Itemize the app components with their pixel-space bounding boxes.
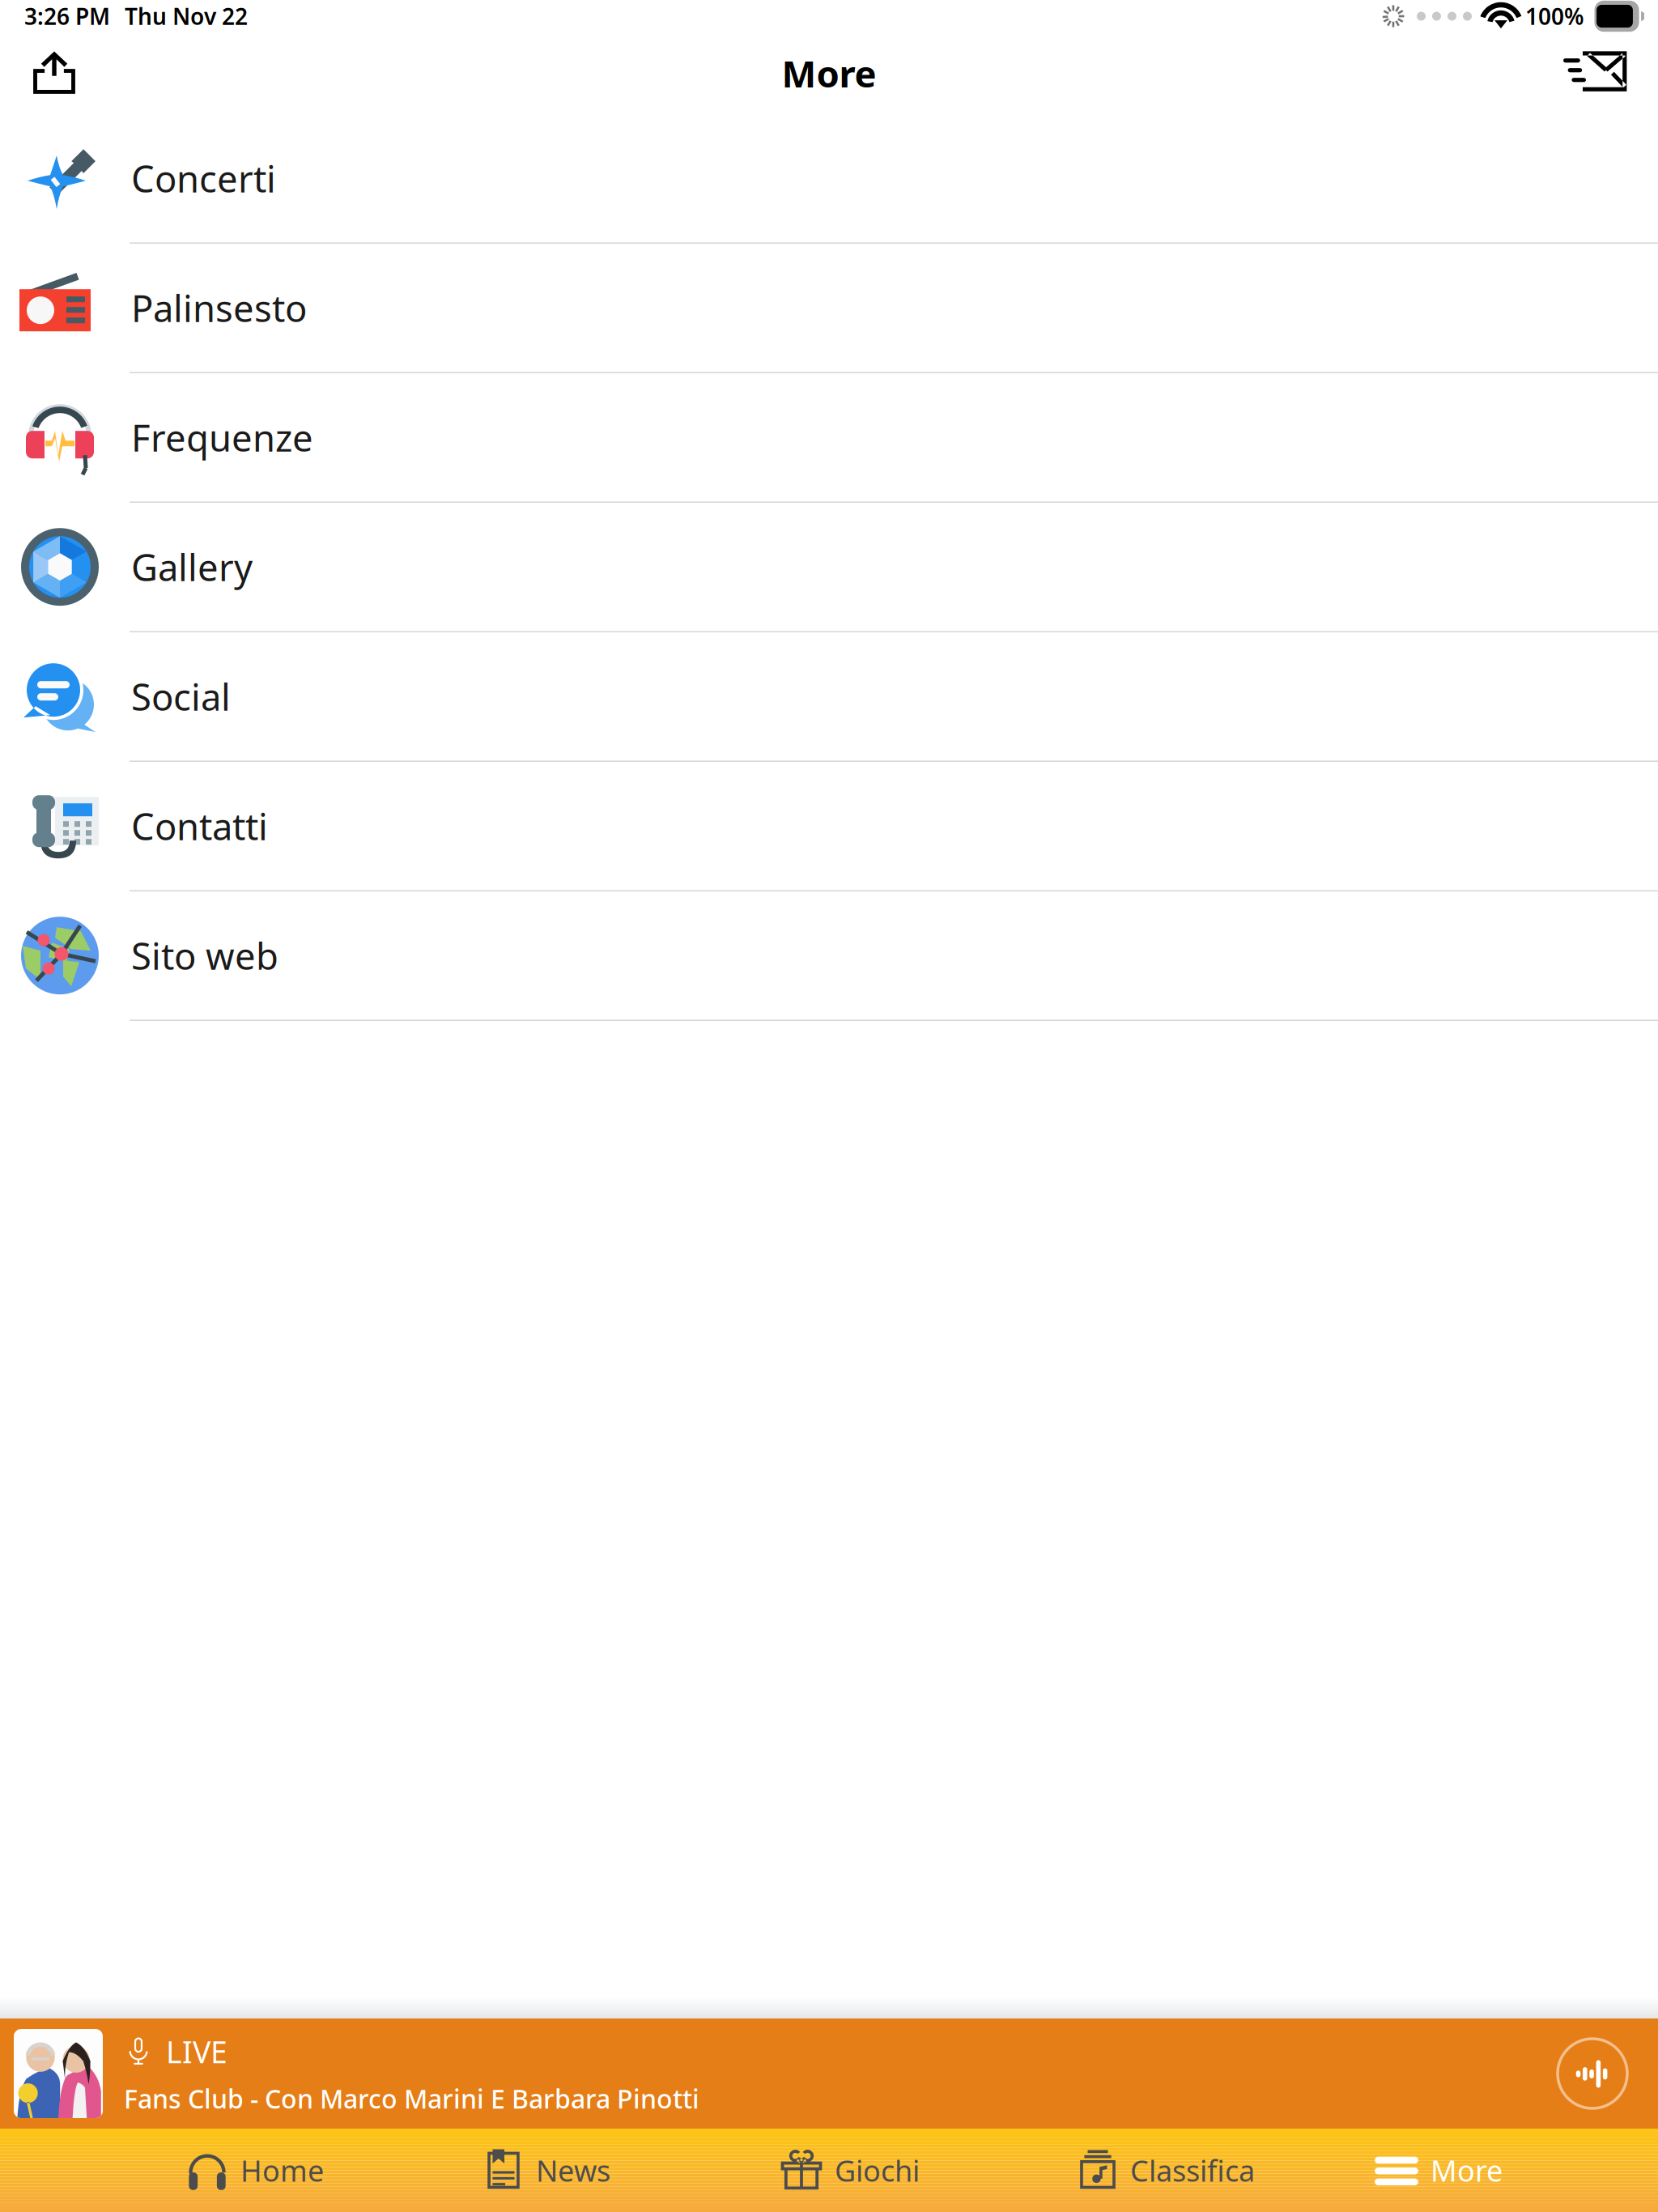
button[interactable]: News xyxy=(483,2129,780,2212)
staticText: Giochi xyxy=(835,2151,920,2190)
staticText: Contatti xyxy=(131,802,268,850)
staticText: 100% xyxy=(1525,1,1584,31)
button[interactable]: Concerti xyxy=(0,114,1658,244)
staticText: Classifica xyxy=(1130,2151,1255,2190)
button[interactable]: LIVE xyxy=(0,2018,1658,2129)
button[interactable]: Palinsesto xyxy=(0,244,1658,373)
button[interactable]: Sito web xyxy=(0,891,1658,1021)
staticText: Social xyxy=(131,672,231,721)
staticText: Concerti xyxy=(131,154,276,203)
staticText: Fans Club - Con Marco Marini E Barbara P… xyxy=(124,2081,699,2116)
button[interactable]: Home xyxy=(185,2129,483,2212)
staticText: Thu Nov 22 xyxy=(125,1,248,31)
button[interactable]: Gallery xyxy=(0,503,1658,632)
staticText: Home xyxy=(240,2151,324,2190)
staticText: More xyxy=(782,49,876,98)
button[interactable]: More xyxy=(1374,2129,1658,2212)
staticText: Frequenze xyxy=(131,413,313,462)
button[interactable]: Frequenze xyxy=(0,373,1658,503)
button[interactable]: Classifica xyxy=(1077,2129,1374,2212)
staticText: Sito web xyxy=(131,931,278,980)
staticText: Gallery xyxy=(131,543,253,591)
staticText: News xyxy=(536,2151,610,2190)
button[interactable]: Giochi xyxy=(780,2129,1077,2212)
staticText: More xyxy=(1431,2151,1503,2190)
button[interactable]: Social xyxy=(0,632,1658,762)
staticText: 3:26 PM xyxy=(24,1,110,31)
button[interactable]: Compose message xyxy=(1533,32,1658,114)
button[interactable]: Contatti xyxy=(0,762,1658,891)
button[interactable]: Share xyxy=(0,32,121,114)
staticText: Palinsesto xyxy=(131,283,307,332)
staticText: LIVE xyxy=(166,2031,227,2072)
